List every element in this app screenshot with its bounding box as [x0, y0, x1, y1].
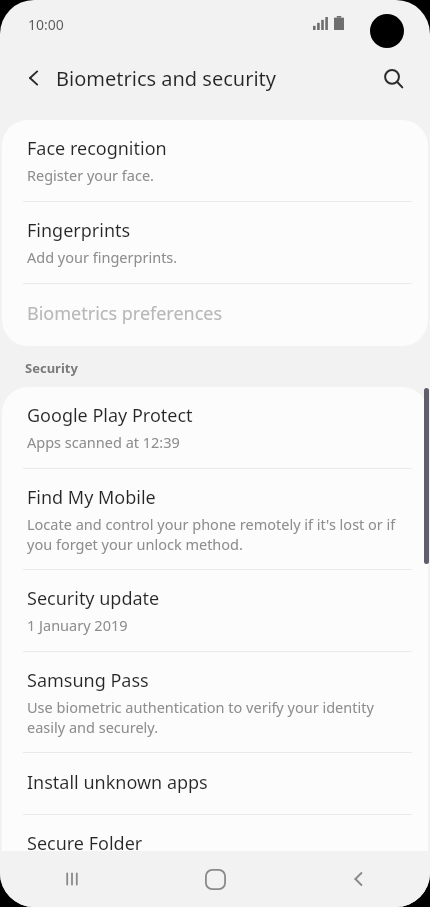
- button[interactable]: Home: [144, 851, 287, 907]
- button[interactable]: Secure Folder: [2, 815, 428, 896]
- button[interactable]: Search: [373, 58, 413, 98]
- button[interactable]: Security update: [2, 570, 428, 651]
- button[interactable]: Biometrics preferences: [2, 284, 428, 346]
- staticText: 10:00: [28, 15, 64, 34]
- staticText: Register your face.: [27, 165, 155, 185]
- button[interactable]: Samsung Pass: [2, 652, 428, 752]
- button[interactable]: Back: [287, 851, 430, 907]
- staticText: 1 January 2019: [27, 615, 128, 635]
- button[interactable]: Recents: [0, 851, 144, 907]
- staticText: Keep your personal files and apps safe a…: [27, 860, 372, 880]
- staticText: Google Play Protect: [27, 403, 193, 428]
- staticText: Face recognition: [27, 136, 167, 161]
- staticText: Biometrics preferences: [27, 301, 223, 326]
- staticText: Apps scanned at 12:39: [27, 432, 180, 452]
- button[interactable]: Fingerprints: [2, 202, 428, 283]
- staticText: Add your fingerprints.: [27, 247, 178, 267]
- staticText: Security: [25, 359, 78, 377]
- button[interactable]: Google Play Protect: [2, 387, 428, 468]
- staticText: Samsung Pass: [27, 668, 149, 693]
- staticText: Fingerprints: [27, 218, 131, 243]
- staticText: Find My Mobile: [27, 485, 156, 510]
- staticText: Use biometric authentication to verify y…: [27, 697, 404, 737]
- button[interactable]: Install unknown apps: [2, 753, 428, 814]
- staticText: Security update: [27, 586, 160, 611]
- staticText: Locate and control your phone remotely i…: [27, 514, 404, 554]
- staticText: Secure Folder: [27, 831, 143, 856]
- staticText: Install unknown apps: [27, 770, 208, 795]
- button[interactable]: Face recognition: [2, 120, 428, 201]
- button[interactable]: Find My Mobile: [2, 469, 428, 569]
- button[interactable]: Back: [14, 58, 54, 98]
- staticText: Biometrics and security: [56, 65, 276, 92]
